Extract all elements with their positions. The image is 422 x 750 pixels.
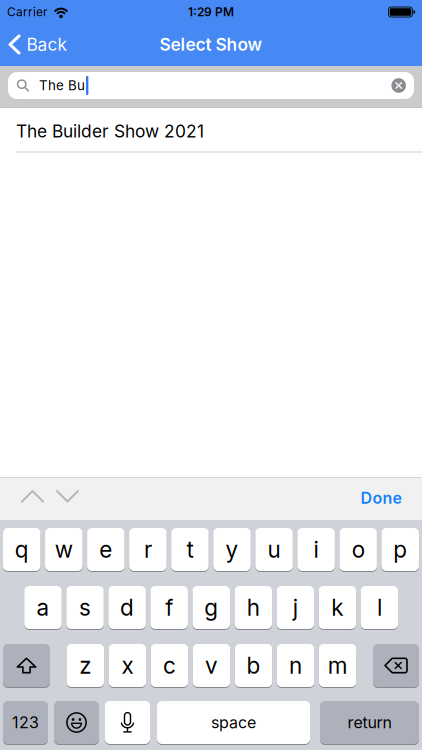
button[interactable]: s (66, 585, 104, 629)
staticText: e (99, 536, 112, 563)
staticText: c (163, 652, 176, 679)
button[interactable]: i (297, 527, 335, 571)
staticText: t (186, 536, 193, 563)
staticText: return (347, 713, 391, 732)
button[interactable]: o (339, 527, 377, 571)
button[interactable]: w (45, 527, 82, 571)
button[interactable]: t (171, 527, 209, 571)
button[interactable]: Delete (373, 643, 419, 687)
button[interactable]: h (234, 585, 272, 629)
staticText: w (55, 536, 73, 563)
staticText: n (289, 652, 302, 679)
staticText: u (267, 536, 280, 563)
staticText: h (247, 594, 260, 621)
button[interactable]: The Builder Show 2021 (0, 108, 422, 152)
button[interactable]: Previous field (21, 489, 44, 502)
button[interactable]: y (213, 527, 251, 571)
staticText: j (293, 594, 298, 621)
staticText: g (204, 594, 218, 621)
staticText: Done (360, 489, 401, 507)
button[interactable]: return (320, 700, 419, 744)
button[interactable]: a (24, 585, 62, 629)
staticText: space (211, 713, 256, 732)
staticText: m (328, 652, 348, 679)
button[interactable]: space (157, 700, 310, 744)
button[interactable]: m (319, 643, 356, 687)
button[interactable]: n (277, 643, 314, 687)
button[interactable]: Dictate (105, 700, 150, 744)
button[interactable]: k (319, 585, 356, 629)
staticText: The Bu (39, 78, 85, 93)
staticText: s (79, 594, 91, 621)
button[interactable]: Emoji (54, 700, 99, 744)
staticText: r (144, 536, 152, 563)
staticText: a (36, 594, 49, 621)
button[interactable]: Clear text (391, 78, 406, 93)
button[interactable]: e (87, 527, 125, 571)
staticText: y (225, 536, 238, 563)
staticText: The Builder Show 2021 (16, 121, 204, 141)
staticText: f (165, 594, 173, 621)
staticText: k (331, 594, 343, 621)
staticText: p (393, 536, 407, 563)
button[interactable]: v (193, 643, 230, 687)
staticText: Back (26, 34, 67, 55)
button[interactable]: Next field (56, 489, 79, 502)
button[interactable]: u (255, 527, 293, 571)
staticText: d (120, 594, 134, 621)
button[interactable]: j (276, 585, 314, 629)
staticText: b (246, 652, 260, 679)
button[interactable]: c (151, 643, 188, 687)
button[interactable]: b (235, 643, 272, 687)
staticText: v (205, 652, 218, 679)
button[interactable]: q (3, 527, 40, 571)
staticText: o (352, 536, 365, 563)
button[interactable]: Back (8, 34, 67, 55)
staticText: x (121, 652, 133, 679)
button[interactable]: p (381, 527, 419, 571)
staticText: Select Show (159, 34, 262, 55)
staticText: Carrier (7, 5, 48, 19)
staticText: l (377, 594, 382, 621)
button[interactable]: Shift (3, 643, 50, 687)
button[interactable]: 123 (3, 700, 48, 744)
button[interactable]: z (67, 643, 104, 687)
button[interactable]: l (361, 585, 398, 629)
staticText: q (15, 536, 29, 563)
staticText: z (79, 652, 91, 679)
button[interactable]: g (192, 585, 230, 629)
button[interactable]: Done (360, 489, 401, 507)
button[interactable]: x (109, 643, 146, 687)
button[interactable]: r (129, 527, 167, 571)
button[interactable]: d (108, 585, 146, 629)
staticText: 1:29 PM (188, 5, 234, 19)
staticText: i (314, 536, 319, 563)
button[interactable]: f (150, 585, 188, 629)
staticText: 123 (12, 713, 39, 732)
